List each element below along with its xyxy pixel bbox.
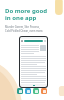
staticText: Do more good in one app xyxy=(5,7,48,22)
button[interactable] xyxy=(20,37,47,87)
button[interactable]: Volunteer app xyxy=(25,88,31,94)
button[interactable]: Donate app xyxy=(17,88,23,94)
button[interactable]: Fundraise app xyxy=(41,88,47,94)
staticText: Murder Gorem, Site Process, Cold Pickled… xyxy=(5,25,44,33)
button[interactable]: Petition app xyxy=(33,88,39,94)
